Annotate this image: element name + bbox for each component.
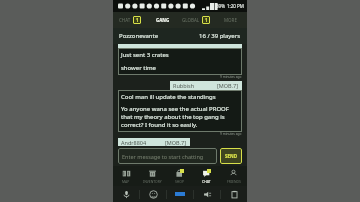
staticText: 1:20 PM <box>227 3 244 9</box>
staticText: Rubbish <box>173 82 195 89</box>
button[interactable]: FRIENDS <box>220 166 247 186</box>
staticText: 59% <box>216 3 225 9</box>
staticText: FRIENDS <box>227 179 241 184</box>
staticText: Pozzonevante <box>119 32 159 40</box>
button[interactable]: MAP <box>113 166 139 186</box>
button[interactable]: Clipboard <box>221 186 247 202</box>
staticText: Just sent 3 crates <box>121 51 169 59</box>
staticText: MAP <box>122 179 130 184</box>
button[interactable]: INVENTORY <box>139 166 166 186</box>
staticText: SEND <box>225 153 237 159</box>
staticText: shower time <box>121 64 156 72</box>
button[interactable]: Sound <box>194 186 220 202</box>
staticText: Yo anyone wana see the actual PROOF that… <box>121 105 239 129</box>
staticText: Cool man ill update the standings <box>121 93 216 101</box>
staticText: [MOB.7] <box>165 139 187 146</box>
staticText: CHAT <box>119 17 131 23</box>
button[interactable]: Cool man ill update the standings <box>121 93 239 129</box>
button[interactable]: Just sent 3 crates <box>121 51 239 72</box>
staticText: Andr8804 <box>121 139 147 146</box>
staticText: 16 / 39 players <box>199 32 241 40</box>
staticText: MORE <box>224 17 237 23</box>
button[interactable]: Emoji <box>140 186 166 202</box>
button[interactable]: SHOP <box>166 166 193 186</box>
staticText: CHAT <box>202 179 211 184</box>
button[interactable]: MORE <box>213 12 247 28</box>
button[interactable]: Andr8804 <box>121 138 187 146</box>
staticText: 1 <box>136 17 139 23</box>
staticText: INVENTORY <box>143 179 162 184</box>
button[interactable]: Pozzonevante <box>119 28 241 44</box>
staticText: [MOB.7] <box>217 82 239 89</box>
staticText: GANG <box>156 17 170 23</box>
staticText: 9 minutes ago <box>220 132 242 136</box>
button[interactable]: Rubbish <box>173 81 239 90</box>
staticText: SHOP <box>175 179 185 184</box>
staticText: Enter message to start chatting <box>122 153 204 160</box>
button[interactable]: CHAT <box>113 12 146 28</box>
button[interactable]: Keyboard <box>167 186 193 202</box>
staticText: 9 minutes ago <box>220 75 242 79</box>
button[interactable]: Voice input <box>113 186 139 202</box>
button[interactable]: Enter message to start chatting <box>122 148 213 164</box>
staticText: 1 <box>205 17 208 23</box>
button[interactable]: CHAT <box>193 166 220 186</box>
button[interactable]: GLOBAL <box>179 12 213 28</box>
staticText: GLOBAL <box>182 17 200 23</box>
button[interactable]: GANG <box>146 12 179 28</box>
button[interactable]: SEND <box>220 148 242 164</box>
